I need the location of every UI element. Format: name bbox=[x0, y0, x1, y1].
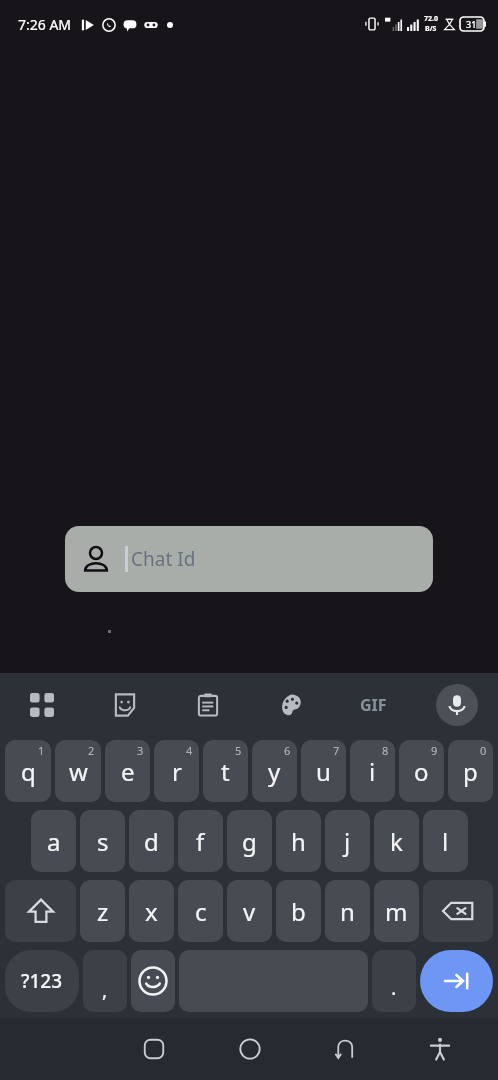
staticText: f bbox=[196, 825, 205, 858]
staticText: 6 bbox=[284, 743, 291, 758]
button[interactable]: GIF bbox=[332, 673, 415, 736]
button[interactable]: ?123 bbox=[5, 950, 79, 1012]
button[interactable]: Apps bbox=[0, 673, 83, 736]
button[interactable]: x bbox=[129, 880, 174, 942]
staticText: 9 bbox=[431, 743, 438, 758]
staticText: g bbox=[242, 825, 257, 858]
staticText: 5 bbox=[235, 743, 242, 758]
button[interactable]: k bbox=[374, 810, 419, 872]
staticText: 1 bbox=[38, 743, 45, 758]
button[interactable]: Stickers bbox=[83, 673, 166, 736]
staticText: 4 bbox=[186, 743, 193, 758]
button[interactable]: v bbox=[227, 880, 272, 942]
button[interactable]: Voice input bbox=[415, 673, 498, 736]
staticText: x bbox=[145, 895, 158, 928]
staticText: ?123 bbox=[21, 968, 63, 994]
staticText: 7 bbox=[333, 743, 340, 758]
staticText: q bbox=[21, 755, 36, 788]
staticText: r bbox=[172, 755, 182, 788]
button[interactable]: r bbox=[154, 740, 199, 802]
button[interactable]: z bbox=[80, 880, 125, 942]
staticText: a bbox=[47, 825, 61, 858]
button[interactable]: m bbox=[374, 880, 419, 942]
button[interactable]: f bbox=[178, 810, 223, 872]
staticText: j bbox=[344, 825, 351, 858]
staticText: u bbox=[316, 755, 331, 788]
button[interactable]: g bbox=[227, 810, 272, 872]
staticText: z bbox=[97, 895, 109, 928]
button[interactable]: n bbox=[325, 880, 370, 942]
button[interactable]: e bbox=[105, 740, 150, 802]
staticText: y bbox=[268, 755, 281, 788]
staticText: 0 bbox=[480, 743, 487, 758]
staticText: 2 bbox=[88, 743, 95, 758]
button[interactable]: Themes bbox=[249, 673, 332, 736]
button[interactable]: p bbox=[448, 740, 493, 802]
staticText: d bbox=[144, 825, 159, 858]
button[interactable]: w bbox=[55, 740, 101, 802]
button[interactable]: q bbox=[5, 740, 51, 802]
button[interactable]: Backspace bbox=[423, 880, 493, 942]
staticText: w bbox=[69, 755, 88, 788]
button[interactable]: l bbox=[423, 810, 468, 872]
button[interactable]: Next bbox=[420, 950, 493, 1012]
staticText: h bbox=[291, 825, 306, 858]
button[interactable]: Home bbox=[202, 1018, 297, 1080]
staticText: 3 bbox=[137, 743, 144, 758]
button[interactable]: Accessibility bbox=[392, 1018, 487, 1080]
button[interactable]: Comma bbox=[83, 950, 127, 1012]
button[interactable]: y bbox=[252, 740, 297, 802]
staticText: b bbox=[291, 895, 306, 928]
button[interactable]: u bbox=[301, 740, 346, 802]
staticText: s bbox=[97, 825, 109, 858]
button[interactable]: i bbox=[350, 740, 395, 802]
staticText: GIF bbox=[360, 694, 387, 716]
button[interactable]: t bbox=[203, 740, 248, 802]
staticText: 31 bbox=[466, 18, 477, 30]
button[interactable]: h bbox=[276, 810, 321, 872]
staticText: t bbox=[221, 755, 230, 788]
staticText: p bbox=[463, 755, 478, 788]
button[interactable]: Period bbox=[372, 950, 416, 1012]
staticText: 8 bbox=[382, 743, 389, 758]
button[interactable]: Chat Id bbox=[65, 526, 433, 592]
button[interactable]: Emoji bbox=[131, 950, 175, 1012]
staticText: B/S bbox=[425, 24, 437, 34]
staticText: 72.0 bbox=[424, 14, 438, 24]
button[interactable]: b bbox=[276, 880, 321, 942]
staticText: Chat Id bbox=[131, 546, 196, 572]
button[interactable]: d bbox=[129, 810, 174, 872]
staticText: 7:26 AM bbox=[18, 15, 72, 34]
button[interactable]: Back bbox=[297, 1018, 392, 1080]
staticText: l bbox=[442, 825, 449, 858]
staticText: n bbox=[340, 895, 355, 928]
staticText: i bbox=[369, 755, 376, 788]
button[interactable]: j bbox=[325, 810, 370, 872]
staticText: , bbox=[102, 976, 108, 1003]
button[interactable]: c bbox=[178, 880, 223, 942]
button[interactable]: a bbox=[31, 810, 76, 872]
staticText: m bbox=[385, 895, 408, 928]
staticText: k bbox=[390, 825, 403, 858]
button[interactable]: Shift bbox=[5, 880, 76, 942]
staticText: o bbox=[414, 755, 429, 788]
button[interactable]: s bbox=[80, 810, 125, 872]
button[interactable]: Recents bbox=[106, 1018, 202, 1080]
button[interactable]: o bbox=[399, 740, 444, 802]
staticText: e bbox=[121, 755, 135, 788]
button[interactable]: Clipboard bbox=[166, 673, 249, 736]
staticText: v bbox=[243, 895, 256, 928]
staticText: . bbox=[391, 974, 397, 1001]
staticText: c bbox=[195, 895, 207, 928]
